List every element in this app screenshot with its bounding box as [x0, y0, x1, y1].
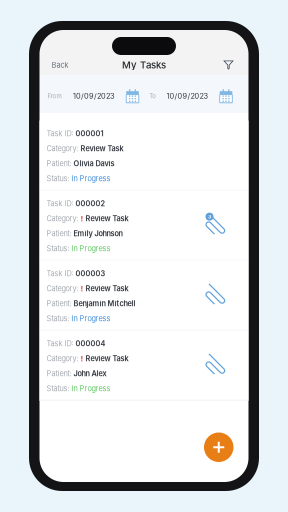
staticText: Task ID: — [46, 339, 73, 348]
button[interactable]: Add task — [204, 432, 248, 482]
staticText: Status: — [46, 384, 69, 393]
button[interactable]: 10/09/2023 — [73, 89, 139, 103]
staticText: Patient: — [46, 369, 71, 378]
staticText: Status: — [46, 244, 69, 253]
staticText: Status: — [46, 314, 69, 323]
staticText: 000002 — [73, 199, 105, 208]
staticText: Category: — [46, 354, 78, 363]
staticText: ! — [78, 284, 83, 293]
staticText: Emily Johnson — [71, 229, 122, 238]
staticText: 10/09/2023 — [166, 92, 208, 100]
staticText: Patient: — [46, 299, 71, 308]
staticText: Task ID: — [46, 199, 73, 208]
staticText: From — [48, 92, 62, 100]
button[interactable]: 10/09/2023 — [166, 89, 232, 103]
staticText: In Progress — [69, 174, 110, 183]
staticText: In Progress — [69, 244, 110, 253]
staticText: To — [149, 92, 156, 100]
staticText: Task ID: — [46, 269, 73, 278]
staticText: Category: — [46, 214, 78, 223]
button[interactable]: Back — [39, 57, 81, 73]
staticText: Category: — [46, 144, 78, 153]
staticText: ! — [78, 214, 83, 223]
staticText: 10/09/2023 — [73, 92, 115, 100]
staticText: ! — [78, 354, 83, 363]
staticText: Patient: — [46, 229, 71, 238]
staticText: Status: — [46, 174, 69, 183]
staticText: Review Task — [83, 354, 128, 363]
staticText: Category: — [46, 284, 78, 293]
staticText: Review Task — [83, 284, 128, 293]
staticText: Patient: — [46, 159, 71, 168]
staticText: John Alex — [71, 369, 106, 378]
staticText: In Progress — [69, 384, 110, 393]
button[interactable]: Task ID: — [39, 260, 248, 330]
staticText: Olivia Davis — [71, 159, 114, 168]
staticText: 3 — [208, 213, 211, 220]
button[interactable]: Task ID: — [39, 120, 248, 190]
staticText: Benjamin Mitchell — [71, 299, 135, 308]
button[interactable]: Filter — [213, 57, 248, 73]
staticText: In Progress — [69, 314, 110, 323]
staticText: Task ID: — [46, 129, 73, 138]
staticText: Review Task — [83, 214, 128, 223]
button[interactable]: Task ID: — [39, 190, 248, 260]
staticText: Back — [51, 61, 68, 69]
staticText: 000001 — [73, 129, 103, 138]
button[interactable]: Task ID: — [39, 330, 248, 400]
staticText: My Tasks — [122, 59, 166, 71]
staticText: 000004 — [73, 339, 105, 348]
staticText: Review Task — [78, 144, 123, 153]
staticText: 000003 — [73, 269, 105, 278]
